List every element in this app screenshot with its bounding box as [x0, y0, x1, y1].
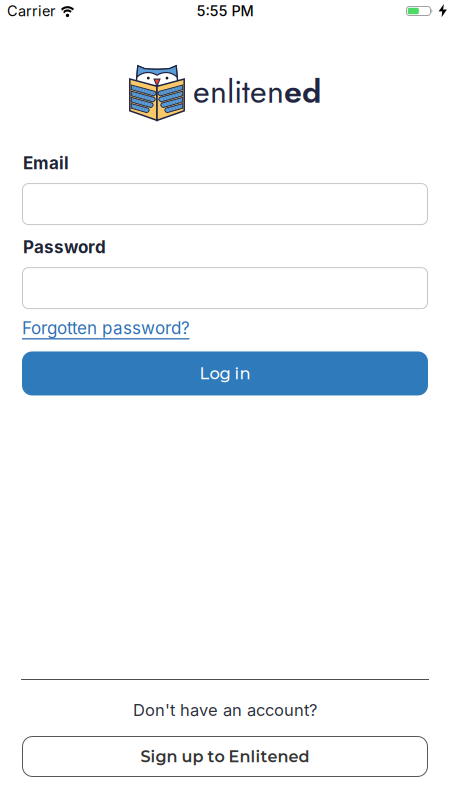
staticText: enlitened — [193, 69, 321, 114]
button[interactable]: Forgotten password? — [22, 318, 190, 339]
button[interactable]: Log in — [22, 351, 428, 395]
button[interactable]: Sign up to Enlitened — [22, 736, 428, 777]
button[interactable] — [22, 183, 428, 225]
staticText: Don't have an account? — [133, 700, 317, 720]
staticText: Forgotten password? — [22, 318, 190, 338]
staticText: Sign up to Enlitened — [140, 747, 309, 766]
staticText: Email — [23, 153, 69, 173]
staticText: Password — [23, 237, 106, 257]
staticText: Carrier — [7, 2, 55, 19]
button[interactable] — [22, 267, 428, 309]
staticText: 5:55 PM — [196, 2, 253, 19]
staticText: Log in — [199, 364, 250, 383]
